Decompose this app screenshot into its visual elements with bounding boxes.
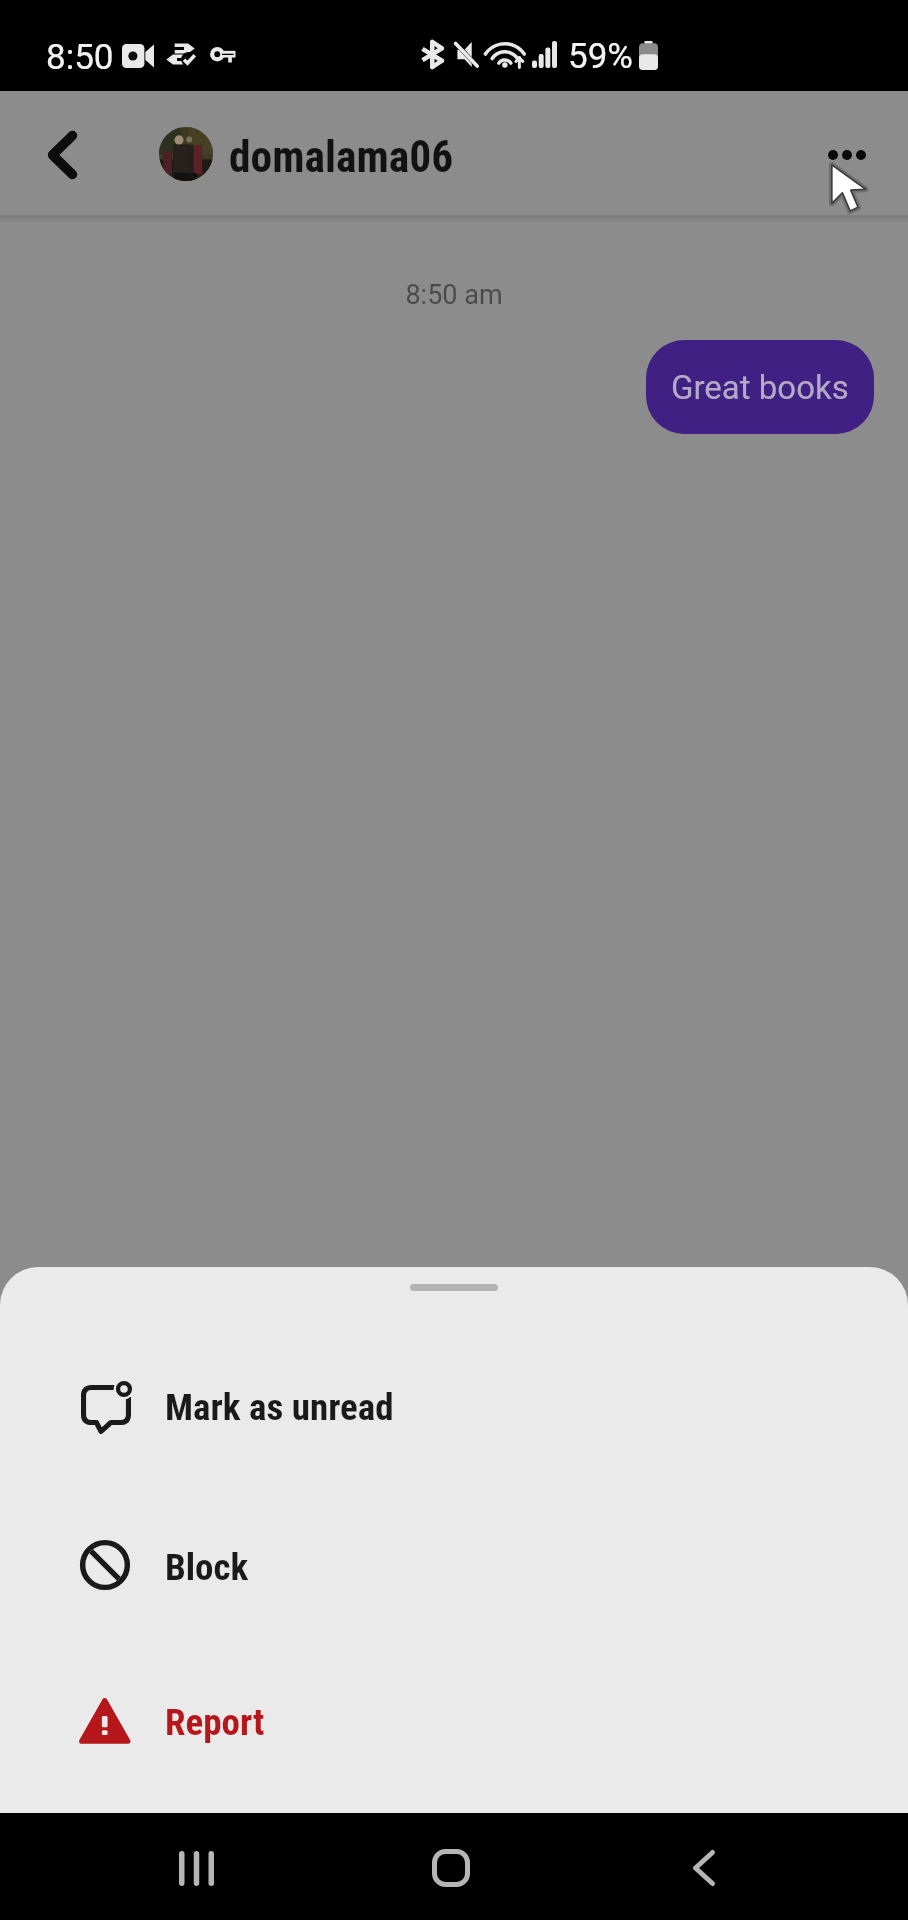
staticText: Great books (671, 368, 849, 407)
staticText: Block (165, 1546, 249, 1589)
button[interactable]: Block (0, 1506, 908, 1624)
button[interactable]: Back (10, 95, 115, 215)
staticText: 8:50 (46, 37, 114, 78)
button[interactable]: Recent apps (141, 1816, 251, 1920)
button[interactable]: More options (788, 95, 906, 215)
button[interactable]: Great books (646, 340, 874, 434)
button[interactable]: Report (0, 1661, 908, 1779)
staticText: 8:50 am (0, 279, 908, 311)
staticText: Mark as unread (165, 1386, 394, 1429)
staticText: Report (165, 1701, 265, 1744)
button[interactable]: Mark as unread (0, 1346, 908, 1464)
button[interactable]: Back (649, 1816, 759, 1920)
staticText: domalama06 (229, 132, 454, 183)
button[interactable]: Home (396, 1816, 506, 1920)
staticText: 59% (568, 36, 633, 77)
